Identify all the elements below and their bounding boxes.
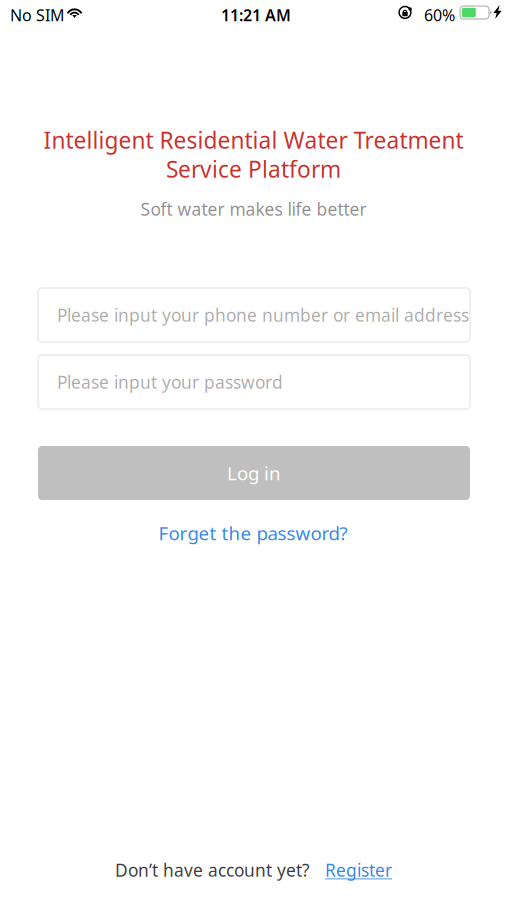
- button[interactable]: Forget the password?: [133, 518, 373, 548]
- staticText: 60%: [424, 4, 455, 26]
- staticText: Register: [325, 858, 392, 881]
- staticText: 11:21 AM: [221, 4, 291, 26]
- staticText: Service Platform: [166, 154, 341, 184]
- staticText: No SIM: [10, 4, 65, 26]
- button[interactable]: Register: [325, 858, 392, 881]
- staticText: Forget the password?: [158, 521, 347, 545]
- staticText: Please input your phone number or email …: [57, 303, 469, 326]
- button[interactable]: Log in: [38, 446, 470, 500]
- button[interactable]: Please input your phone number or email …: [38, 288, 470, 342]
- staticText: Intelligent Residential Water Treatment: [43, 125, 463, 155]
- staticText: Please input your password: [57, 370, 283, 393]
- button[interactable]: Please input your password: [38, 355, 470, 409]
- staticText: Log in: [227, 461, 281, 485]
- staticText: Don’t have account yet?: [115, 858, 310, 881]
- staticText: Soft water makes life better: [140, 197, 366, 220]
